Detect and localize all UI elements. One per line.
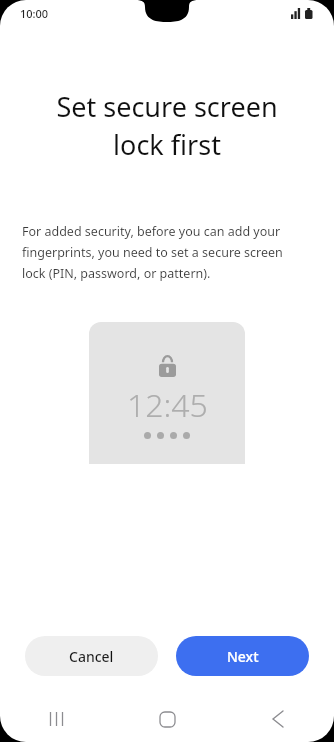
staticText: 12:45 xyxy=(127,383,208,427)
staticText: Cancel xyxy=(69,647,114,666)
button[interactable]: Back xyxy=(250,696,306,742)
staticText: Set secure screen lock first xyxy=(14,88,320,163)
button[interactable]: Next xyxy=(176,636,309,676)
button[interactable]: Home xyxy=(139,696,195,742)
staticText: For added security, before you can add y… xyxy=(22,223,306,282)
button[interactable]: Recents xyxy=(28,696,84,742)
button[interactable]: Cancel xyxy=(25,636,158,676)
staticText: Next xyxy=(227,647,259,666)
staticText: 10:00 xyxy=(20,6,49,21)
